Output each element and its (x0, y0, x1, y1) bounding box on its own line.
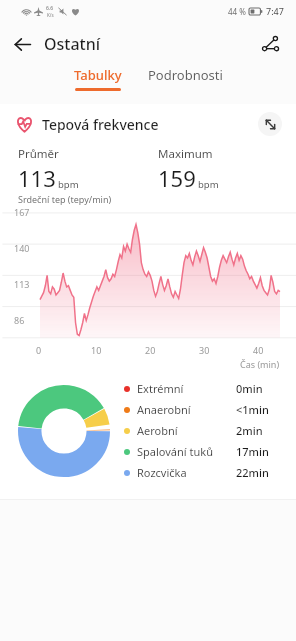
staticText: 6.6 (46, 5, 54, 12)
button[interactable]: Share (250, 24, 290, 64)
staticText: 0min (236, 381, 263, 396)
staticText: 159 (158, 163, 196, 193)
staticText: Rozcvička (137, 465, 187, 480)
staticText: 113 (14, 278, 30, 290)
button[interactable]: Tabulky (66, 66, 130, 91)
staticText: Anaerobní (137, 402, 191, 417)
staticText: bpm (58, 178, 79, 191)
staticText: Maximum (158, 146, 213, 162)
staticText: Ostatní (44, 33, 101, 55)
staticText: 30 (199, 344, 210, 356)
staticText: 2min (236, 423, 263, 438)
staticText: 113 (18, 163, 56, 193)
staticText: Čas (min) (240, 358, 280, 370)
button[interactable]: Podrobnosti (140, 66, 231, 84)
staticText: 20 (145, 344, 156, 356)
staticText: Podrobnosti (148, 66, 223, 84)
staticText: Tepová frekvence (42, 115, 159, 134)
button[interactable]: Back (0, 22, 44, 66)
staticText: 10 (91, 344, 102, 356)
staticText: 7:47 (266, 5, 284, 17)
button[interactable]: Spalování tuků (124, 441, 282, 462)
staticText: 140 (14, 242, 30, 254)
staticText: 17min (236, 444, 269, 459)
staticText: Spalování tuků (137, 444, 213, 459)
button[interactable]: Tepová frekvence (16, 115, 159, 134)
staticText: Tabulky (74, 66, 122, 84)
button[interactable]: Rozcvička (124, 462, 282, 483)
button[interactable]: Expand chart (258, 112, 282, 136)
staticText: 0 (36, 344, 42, 356)
staticText: Srdeční tep (tepy/min) (18, 193, 112, 205)
staticText: Extrémní (137, 381, 184, 396)
staticText: Průměr (18, 146, 59, 162)
staticText: Aerobní (137, 423, 178, 438)
staticText: 167 (14, 206, 30, 218)
staticText: K/s (47, 12, 54, 18)
button[interactable]: Aerobní (124, 420, 282, 441)
staticText: 22min (236, 465, 269, 480)
staticText: 44 % (228, 6, 246, 17)
button[interactable]: Extrémní (124, 378, 282, 399)
button[interactable]: Anaerobní (124, 399, 282, 420)
staticText: 86 (14, 314, 25, 326)
staticText: bpm (198, 178, 219, 191)
staticText: 40 (253, 344, 264, 356)
staticText: <1min (236, 402, 269, 417)
